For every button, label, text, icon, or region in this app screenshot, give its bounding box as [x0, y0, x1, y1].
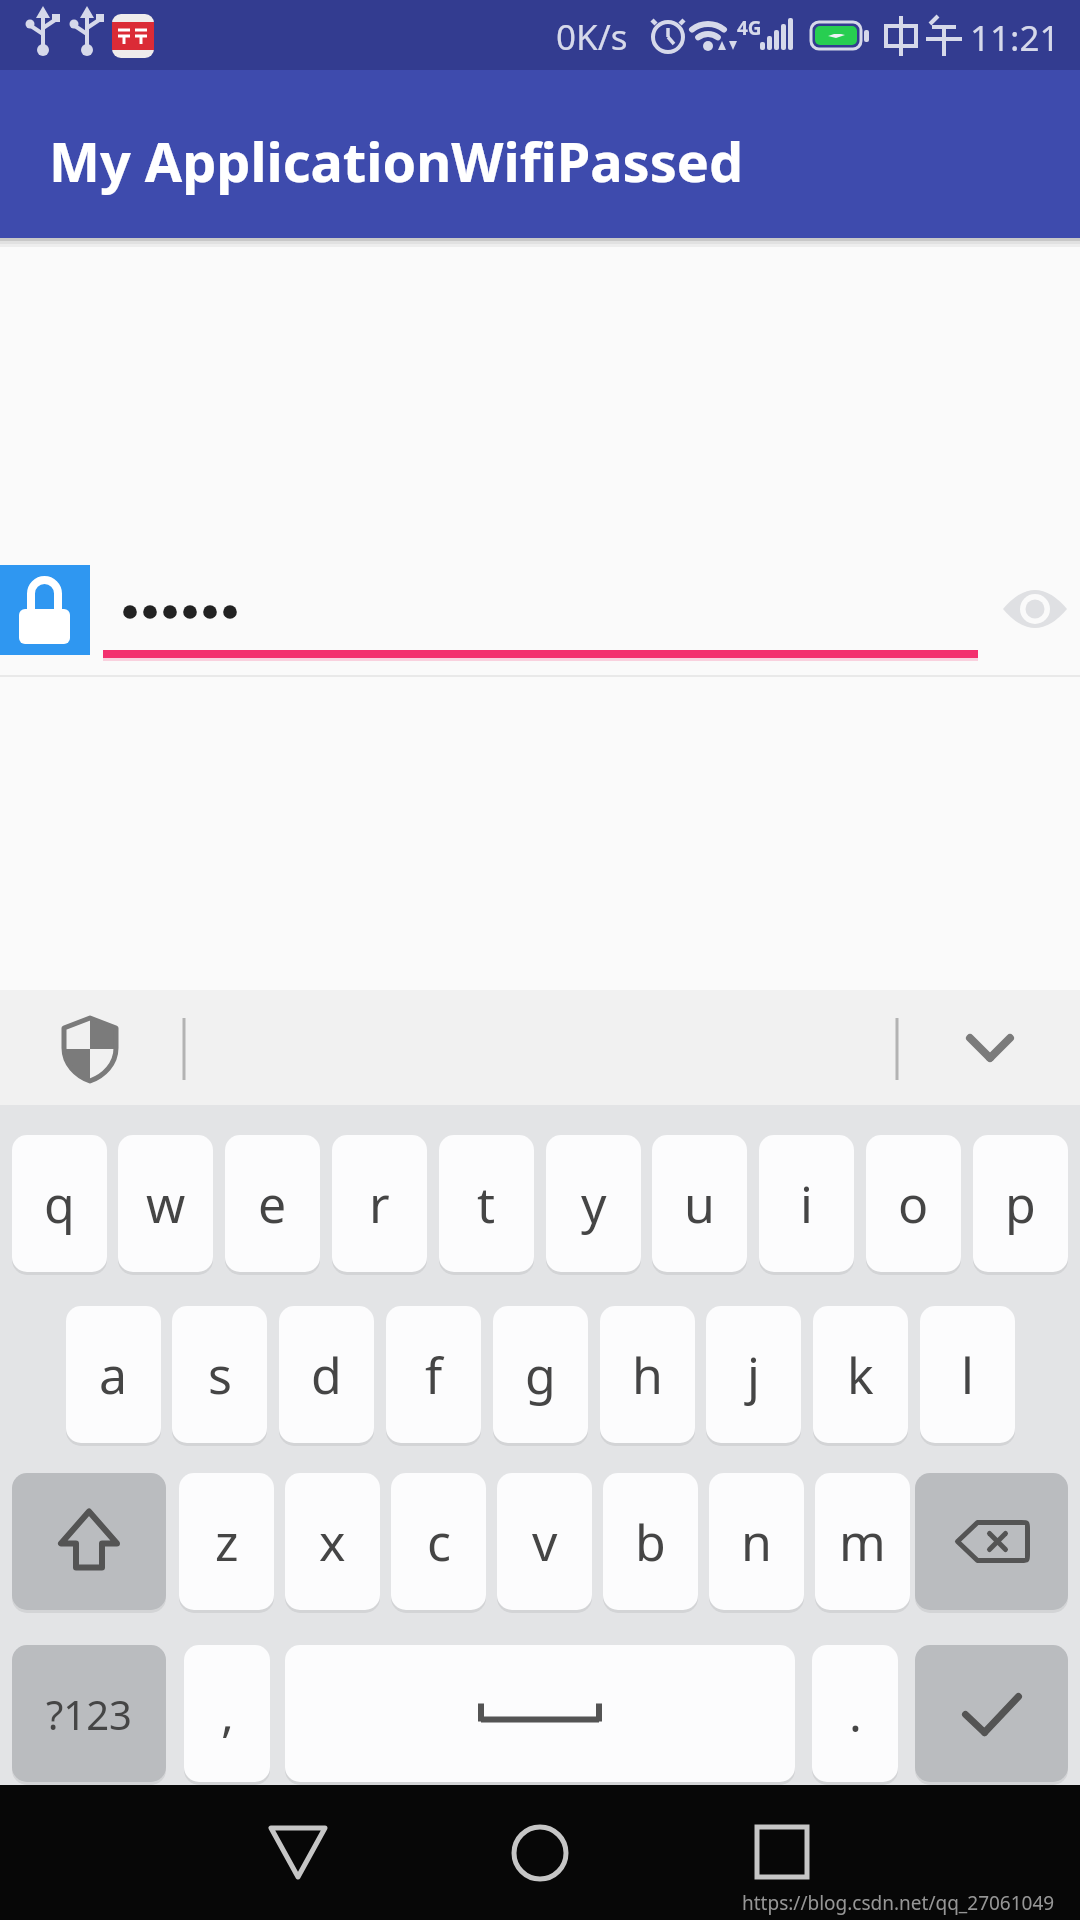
button[interactable]: d: [279, 1306, 374, 1443]
staticText: k: [847, 1341, 874, 1409]
staticText: m: [839, 1508, 886, 1576]
button[interactable]: [490, 1805, 590, 1900]
button[interactable]: ,: [184, 1645, 270, 1782]
button[interactable]: k: [813, 1306, 908, 1443]
button[interactable]: t: [439, 1135, 534, 1272]
staticText: ,: [221, 1681, 234, 1746]
button[interactable]: c: [391, 1473, 486, 1610]
button[interactable]: u: [652, 1135, 747, 1272]
staticText: n: [741, 1508, 772, 1576]
button[interactable]: [998, 580, 1072, 638]
staticText: 0K/s: [556, 13, 628, 61]
button[interactable]: [930, 1000, 1050, 1095]
staticText: p: [1005, 1170, 1036, 1238]
staticText: y: [581, 1170, 607, 1238]
button[interactable]: h: [600, 1306, 695, 1443]
staticText: 4G: [737, 15, 762, 41]
staticText: s: [208, 1341, 232, 1409]
staticText: a: [99, 1341, 128, 1409]
staticText: r: [369, 1170, 390, 1238]
staticText: b: [635, 1508, 666, 1576]
button[interactable]: v: [497, 1473, 592, 1610]
button[interactable]: [248, 1805, 348, 1900]
button[interactable]: z: [179, 1473, 274, 1610]
staticText: t: [477, 1170, 496, 1238]
staticText: https://blog.csdn.net/qq_27061049: [742, 1890, 1055, 1916]
button[interactable]: [285, 1645, 795, 1782]
button[interactable]: e: [225, 1135, 320, 1272]
button[interactable]: n: [709, 1473, 804, 1610]
staticText: My ApplicationWifiPassed: [49, 124, 744, 198]
button[interactable]: g: [493, 1306, 588, 1443]
button[interactable]: [915, 1473, 1068, 1610]
staticText: w: [146, 1170, 186, 1238]
button[interactable]: x: [285, 1473, 380, 1610]
staticText: c: [427, 1508, 451, 1576]
button[interactable]: s: [172, 1306, 267, 1443]
button[interactable]: [12, 1473, 166, 1610]
button[interactable]: q: [12, 1135, 107, 1272]
button[interactable]: [0, 565, 90, 655]
staticText: 11:21: [970, 14, 1060, 62]
staticText: x: [319, 1508, 346, 1576]
button[interactable]: w: [118, 1135, 213, 1272]
staticText: l: [961, 1341, 974, 1409]
staticText: d: [311, 1341, 342, 1409]
button[interactable]: a: [66, 1306, 161, 1443]
button[interactable]: r: [332, 1135, 427, 1272]
button[interactable]: m: [815, 1473, 910, 1610]
staticText: q: [44, 1170, 75, 1238]
button[interactable]: ?123: [12, 1645, 166, 1782]
staticText: .: [849, 1681, 862, 1746]
button[interactable]: f: [386, 1306, 481, 1443]
staticText: g: [525, 1341, 556, 1409]
button[interactable]: i: [759, 1135, 854, 1272]
button[interactable]: [915, 1645, 1068, 1782]
staticText: u: [684, 1170, 715, 1238]
staticText: h: [632, 1341, 663, 1409]
button[interactable]: y: [546, 1135, 641, 1272]
button[interactable]: j: [706, 1306, 801, 1443]
staticText: e: [258, 1170, 287, 1238]
staticText: o: [898, 1170, 929, 1238]
button[interactable]: .: [812, 1645, 898, 1782]
staticText: v: [532, 1508, 558, 1576]
staticText: j: [747, 1341, 760, 1409]
button[interactable]: b: [603, 1473, 698, 1610]
staticText: f: [425, 1341, 443, 1409]
button[interactable]: [40, 1000, 140, 1095]
button[interactable]: o: [866, 1135, 961, 1272]
button[interactable]: l: [920, 1306, 1015, 1443]
button[interactable]: p: [973, 1135, 1068, 1272]
staticText: ?123: [46, 1687, 132, 1741]
staticText: i: [800, 1170, 813, 1238]
staticText: z: [215, 1508, 239, 1576]
button[interactable]: [732, 1805, 832, 1900]
